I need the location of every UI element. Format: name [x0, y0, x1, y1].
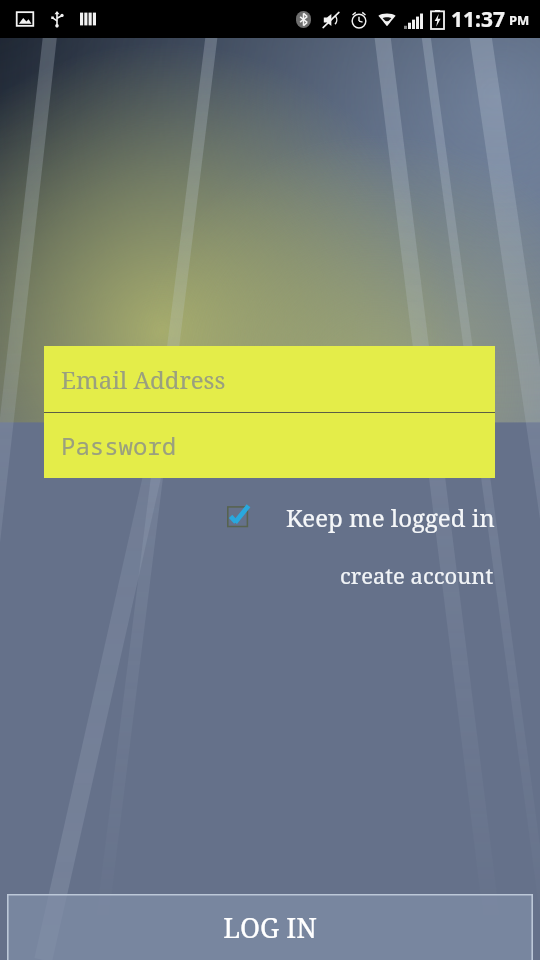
- button[interactable]: Password: [44, 413, 495, 478]
- button[interactable]: create account: [338, 556, 496, 594]
- button[interactable]: Email Address: [44, 346, 495, 412]
- staticText: Email Address: [61, 363, 226, 396]
- staticText: Password: [61, 429, 177, 462]
- button[interactable]: LOG IN: [7, 894, 533, 960]
- button[interactable]: Keep me logged in checkbox: [222, 500, 495, 534]
- staticText: create account: [340, 560, 494, 590]
- staticText: LOG IN: [223, 909, 317, 946]
- staticText: 11:37: [451, 5, 505, 34]
- other: Keep me logged in checkbox: [222, 500, 256, 534]
- staticText: Keep me logged in: [286, 501, 495, 534]
- staticText: PM: [509, 11, 530, 29]
